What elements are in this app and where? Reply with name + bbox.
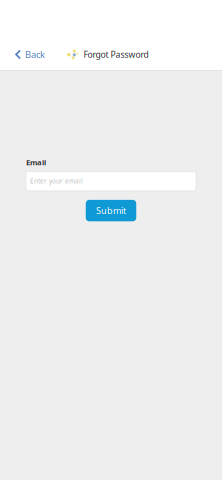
staticText: Forgot Password <box>83 48 148 60</box>
button[interactable]: Back <box>0 43 55 66</box>
staticText: Email <box>26 157 46 167</box>
staticText: Submit <box>96 204 126 217</box>
staticText: Enter your email <box>30 177 83 185</box>
staticText: Back <box>25 48 45 61</box>
button[interactable]: Submit <box>86 200 136 221</box>
button[interactable]: Enter your email <box>26 171 196 191</box>
